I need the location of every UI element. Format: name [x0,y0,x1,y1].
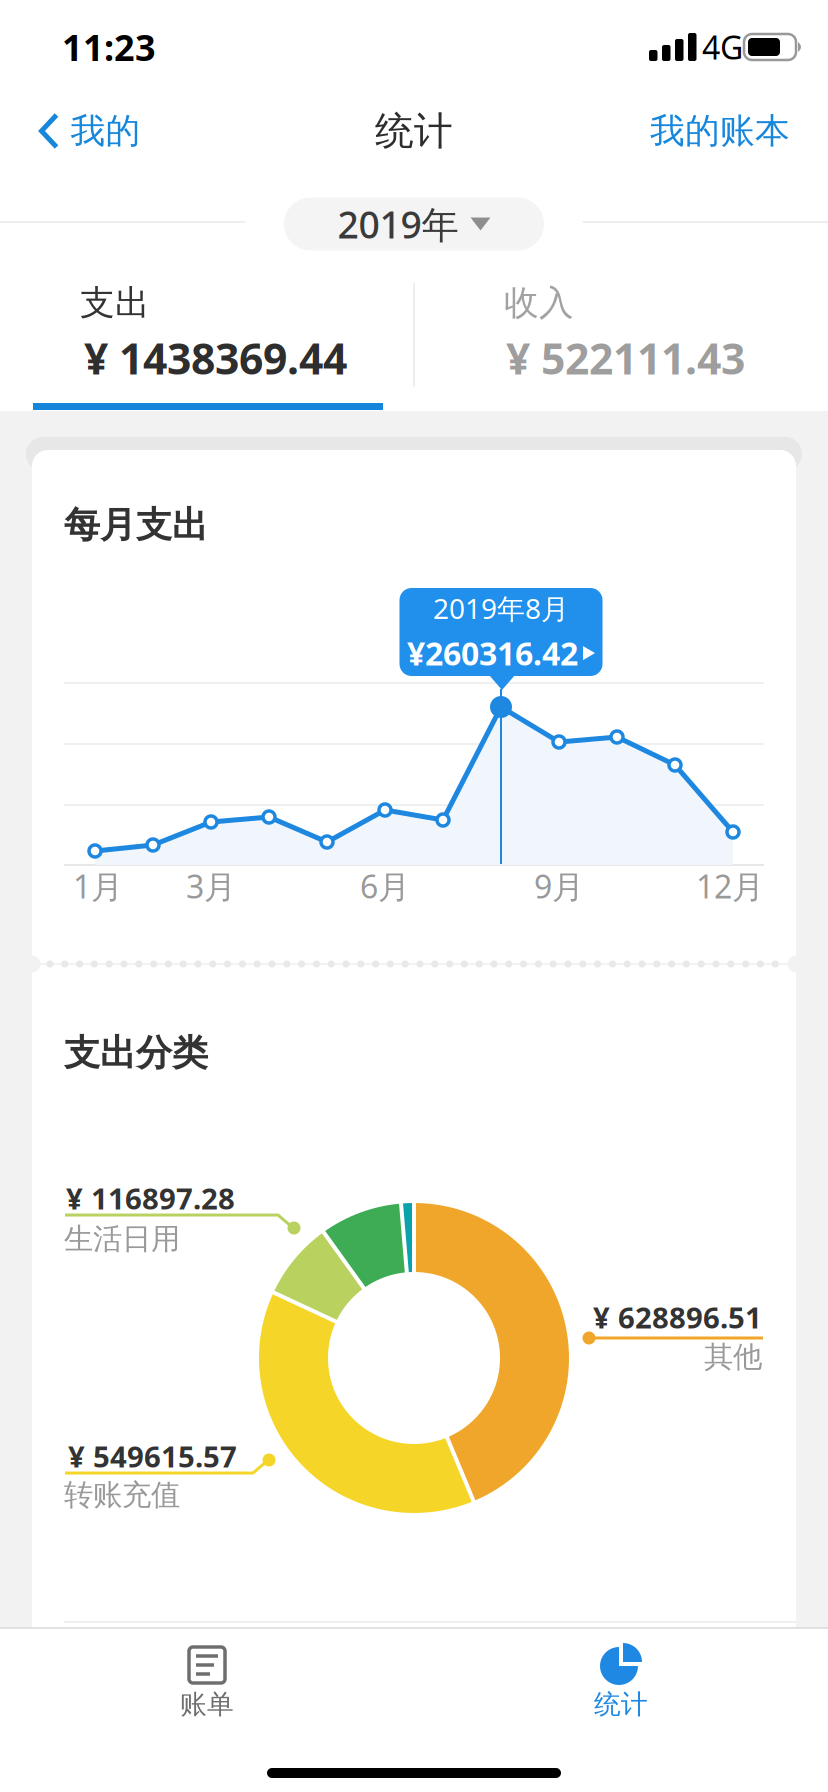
staticText: ¥ 522111.43 [506,330,745,386]
staticText: 9月 [534,865,584,907]
staticText: ¥ 628896.51 [593,1297,762,1336]
staticText: 12月 [696,865,764,907]
staticText: 收入 [504,282,574,324]
staticText: 每月支出 [64,503,208,547]
staticText: 生活日用 [64,1221,180,1257]
staticText: ¥ 116897.28 [66,1178,235,1217]
staticText: 6月 [360,865,410,907]
staticText: 我的账本 [650,110,790,152]
staticText: 3月 [186,865,236,907]
staticText: 其他 [704,1339,762,1375]
staticText: 支出分类 [64,1031,208,1075]
button[interactable]: 收入 [414,270,828,410]
staticText: 转账充值 [64,1477,180,1513]
button[interactable]: 我的账本 [650,110,790,152]
button[interactable]: 账单 [0,1645,414,1792]
button[interactable]: 2019年 [284,197,544,250]
staticText: ¥ 1438369.44 [84,330,347,386]
button[interactable]: 统计 [414,1645,828,1792]
staticText: ¥260316.42 [407,632,578,674]
staticText: 统计 [375,107,453,155]
button[interactable]: 我的 [39,110,140,152]
button[interactable]: 2019年8月 [386,588,616,676]
staticText: 账单 [180,1688,234,1721]
staticText: 11:23 [62,23,156,71]
staticText: 4G [702,26,743,68]
staticText: 支出 [80,282,150,324]
staticText: 2019年8月 [433,590,569,627]
staticText: 统计 [594,1688,648,1721]
button[interactable]: 支出 [0,270,414,410]
staticText: 2019年 [337,199,458,249]
staticText: ¥ 549615.57 [68,1436,237,1475]
staticText: 我的 [70,110,140,152]
staticText: 1月 [73,865,123,907]
